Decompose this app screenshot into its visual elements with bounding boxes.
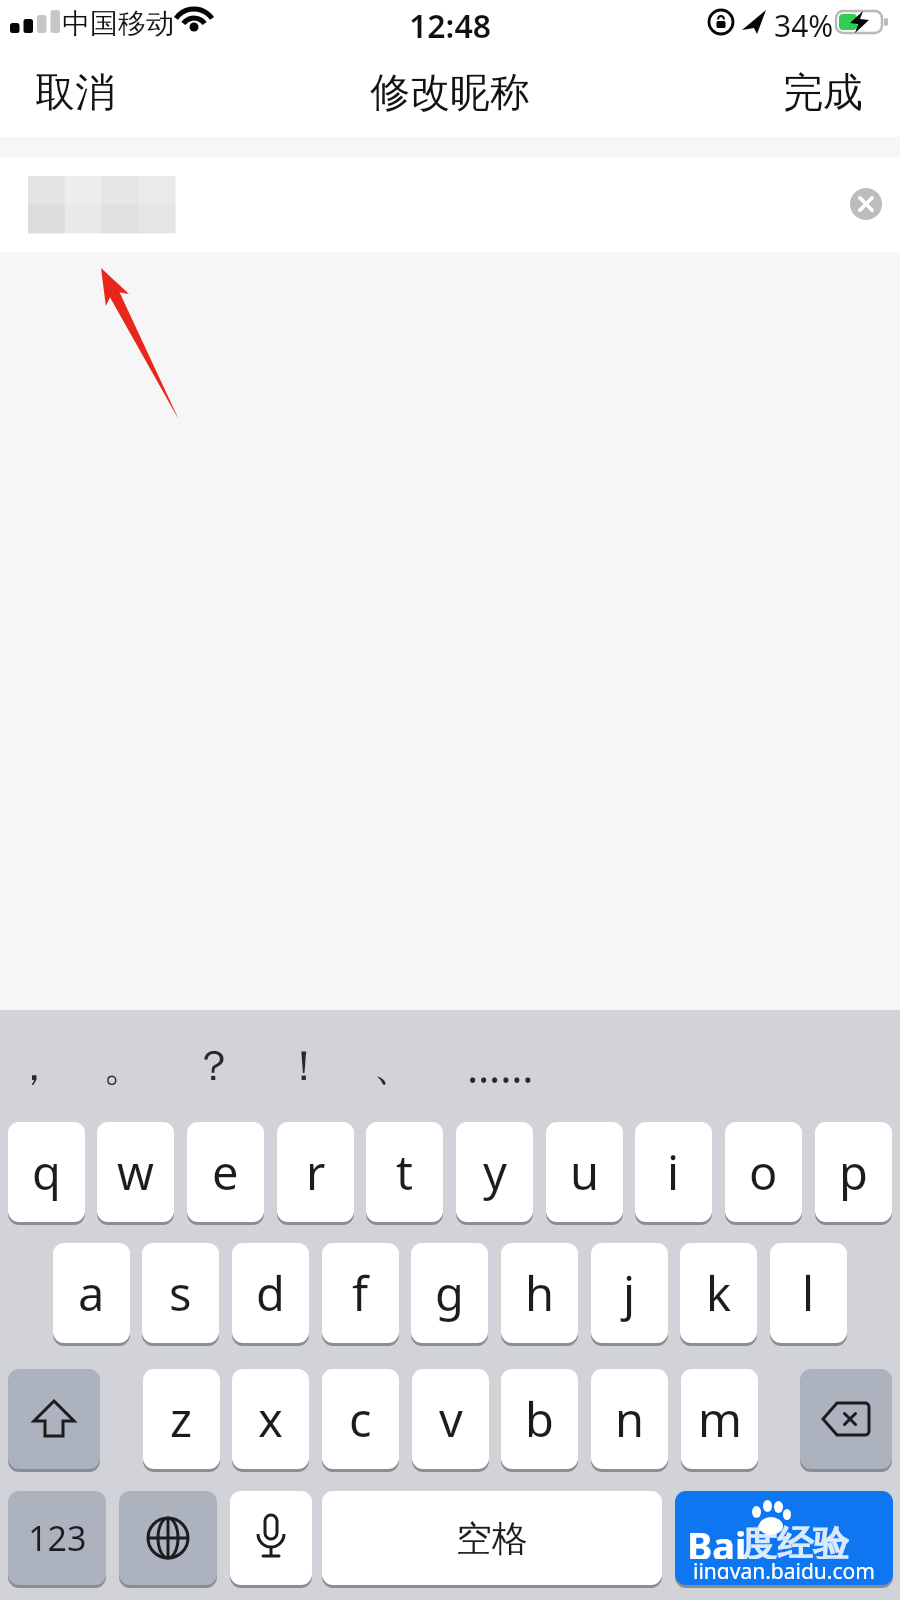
staticText: 取消: [35, 67, 115, 117]
staticText: ？: [193, 1040, 235, 1093]
staticText: e: [212, 1140, 239, 1204]
staticText: x: [258, 1387, 283, 1451]
staticText: r: [306, 1140, 326, 1204]
staticText: g: [435, 1261, 464, 1325]
button[interactable]: k: [680, 1243, 757, 1343]
button[interactable]: f: [322, 1243, 399, 1343]
button[interactable]: g: [411, 1243, 488, 1343]
staticText: 中国移动: [62, 6, 174, 41]
button[interactable]: a: [53, 1243, 130, 1343]
button[interactable]: z: [143, 1369, 220, 1469]
staticText: s: [169, 1261, 192, 1325]
staticText: 123: [28, 1515, 87, 1561]
button[interactable]: ！: [259, 1024, 349, 1108]
staticText: Bai: [687, 1519, 747, 1559]
button[interactable]: 完成: [778, 62, 868, 122]
button[interactable]: w: [97, 1122, 174, 1222]
staticText: w: [117, 1140, 154, 1204]
button[interactable]: j: [591, 1243, 668, 1343]
button[interactable]: [119, 1491, 217, 1585]
button[interactable]: e: [187, 1122, 264, 1222]
button[interactable]: ，: [0, 1024, 79, 1108]
button[interactable]: q: [8, 1122, 85, 1222]
staticText: a: [78, 1261, 105, 1325]
button[interactable]: v: [412, 1369, 489, 1469]
staticText: 、: [373, 1040, 415, 1093]
staticText: n: [615, 1387, 645, 1451]
button[interactable]: [850, 188, 882, 220]
staticText: v: [439, 1387, 463, 1451]
button[interactable]: [230, 1491, 312, 1585]
staticText: 修改昵称: [370, 67, 530, 117]
staticText: z: [170, 1387, 193, 1451]
button[interactable]: [8, 1369, 100, 1469]
button[interactable]: 空格: [322, 1491, 662, 1585]
staticText: j: [623, 1261, 636, 1325]
staticText: 空格: [456, 1516, 528, 1561]
staticText: q: [32, 1140, 61, 1204]
staticText: ！: [283, 1040, 325, 1093]
button[interactable]: m: [681, 1369, 758, 1469]
staticText: u: [570, 1140, 600, 1204]
button[interactable]: Bai: [675, 1491, 893, 1585]
button[interactable]: d: [232, 1243, 309, 1343]
staticText: k: [706, 1261, 732, 1325]
button[interactable]: ……: [455, 1024, 545, 1108]
button[interactable]: y: [456, 1122, 533, 1222]
staticText: y: [483, 1140, 507, 1204]
staticText: ……: [467, 1038, 534, 1095]
staticText: o: [749, 1140, 778, 1204]
button[interactable]: t: [366, 1122, 443, 1222]
staticText: f: [352, 1261, 369, 1325]
button[interactable]: ？: [169, 1024, 259, 1108]
button[interactable]: 、: [349, 1024, 439, 1108]
button[interactable]: o: [725, 1122, 802, 1222]
staticText: jingyan.baidu.com: [693, 1557, 875, 1579]
button[interactable]: b: [501, 1369, 578, 1469]
staticText: m: [698, 1387, 742, 1451]
staticText: ，: [13, 1040, 55, 1093]
button[interactable]: 。: [79, 1024, 169, 1108]
staticText: 。: [103, 1040, 145, 1093]
staticText: l: [802, 1261, 815, 1325]
button[interactable]: i: [635, 1122, 712, 1222]
button[interactable]: [800, 1369, 892, 1469]
staticText: i: [667, 1140, 680, 1204]
button[interactable]: x: [232, 1369, 309, 1469]
button[interactable]: c: [322, 1369, 399, 1469]
button[interactable]: r: [277, 1122, 354, 1222]
staticText: 完成: [783, 67, 863, 117]
staticText: 度经验: [741, 1521, 849, 1559]
button[interactable]: l: [770, 1243, 847, 1343]
button[interactable]: [0, 157, 900, 252]
button[interactable]: n: [591, 1369, 668, 1469]
button[interactable]: s: [142, 1243, 219, 1343]
staticText: 34%: [774, 5, 834, 41]
staticText: p: [839, 1140, 868, 1204]
button[interactable]: h: [501, 1243, 578, 1343]
button[interactable]: u: [546, 1122, 623, 1222]
staticText: h: [525, 1261, 555, 1325]
staticText: b: [525, 1387, 554, 1451]
staticText: c: [349, 1387, 372, 1451]
button[interactable]: 取消: [30, 62, 120, 122]
button[interactable]: 123: [8, 1491, 106, 1585]
staticText: t: [396, 1140, 413, 1204]
button[interactable]: p: [815, 1122, 892, 1222]
staticText: 12:48: [409, 4, 492, 42]
staticText: d: [256, 1261, 285, 1325]
